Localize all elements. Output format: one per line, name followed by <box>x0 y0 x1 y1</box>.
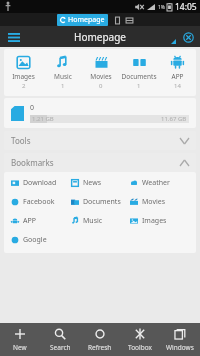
button[interactable]: APP <box>11 216 71 226</box>
button[interactable]: News <box>71 178 130 188</box>
button[interactable]: 0 <box>4 98 196 128</box>
staticText: Bookmarks <box>11 157 54 168</box>
staticText: Weather <box>142 178 170 188</box>
staticText: 14 <box>174 82 181 90</box>
button[interactable]: Documents <box>71 197 130 207</box>
button[interactable]: Menu <box>6 29 22 45</box>
staticText: 1% <box>158 4 166 11</box>
button[interactable]: Music <box>71 216 130 226</box>
staticText: News <box>83 178 101 188</box>
button[interactable]: Music <box>43 54 82 91</box>
staticText: Refresh <box>88 343 112 352</box>
staticText: Music <box>83 216 103 226</box>
button[interactable]: Windows <box>160 323 200 356</box>
staticText: Facebook <box>23 197 55 207</box>
button[interactable]: APP <box>158 54 196 91</box>
staticText: Music <box>54 72 72 81</box>
staticText: Homepage <box>68 15 105 25</box>
button[interactable]: Search <box>40 323 80 356</box>
staticText: APP <box>23 216 36 226</box>
staticText: 2 <box>22 82 26 90</box>
button[interactable]: Images <box>4 54 43 91</box>
staticText: Tools <box>11 135 31 146</box>
button[interactable]: Toolbox <box>120 323 160 356</box>
staticText: 14:05 <box>175 1 197 13</box>
button[interactable]: Download <box>11 178 71 188</box>
button[interactable]: Homepage <box>57 14 108 26</box>
button[interactable]: Refresh <box>80 323 120 356</box>
staticText: Google <box>23 235 47 245</box>
button[interactable]: Device <box>113 16 122 25</box>
staticText: Homepage <box>74 30 126 44</box>
other: Expand <box>180 138 189 144</box>
button[interactable]: Tools <box>4 131 196 150</box>
button[interactable]: Documents <box>120 54 158 91</box>
button[interactable]: Weather <box>130 178 189 188</box>
staticText: Search <box>50 343 71 352</box>
staticText: 11.67 GB <box>161 115 187 123</box>
button[interactable]: Facebook <box>11 197 71 207</box>
button[interactable]: Bookmarks <box>4 153 196 172</box>
staticText: Documents <box>83 197 121 207</box>
button[interactable]: Movies <box>130 197 189 207</box>
staticText: 0 <box>30 103 35 113</box>
staticText: 1 <box>137 82 141 90</box>
button[interactable]: New <box>0 323 40 356</box>
staticText: Images <box>12 72 35 81</box>
other: Collapse <box>180 160 189 166</box>
staticText: Windows <box>166 343 194 352</box>
button[interactable]: Storage <box>125 16 134 25</box>
button[interactable]: Movies <box>82 54 120 91</box>
button[interactable]: Google <box>11 235 71 245</box>
staticText: Movies <box>142 197 166 207</box>
staticText: Toolbox <box>128 343 152 352</box>
staticText: Documents <box>121 72 157 81</box>
staticText: 0 <box>99 82 103 90</box>
staticText: 1 <box>61 82 65 90</box>
button[interactable]: Close <box>180 29 196 45</box>
staticText: Movies <box>90 72 112 81</box>
staticText: Images <box>142 216 167 226</box>
staticText: New <box>13 343 27 352</box>
button[interactable]: Images <box>130 216 189 226</box>
staticText: 1.21 GB <box>32 115 54 123</box>
staticText: APP <box>171 72 184 81</box>
staticText: Download <box>23 178 57 188</box>
